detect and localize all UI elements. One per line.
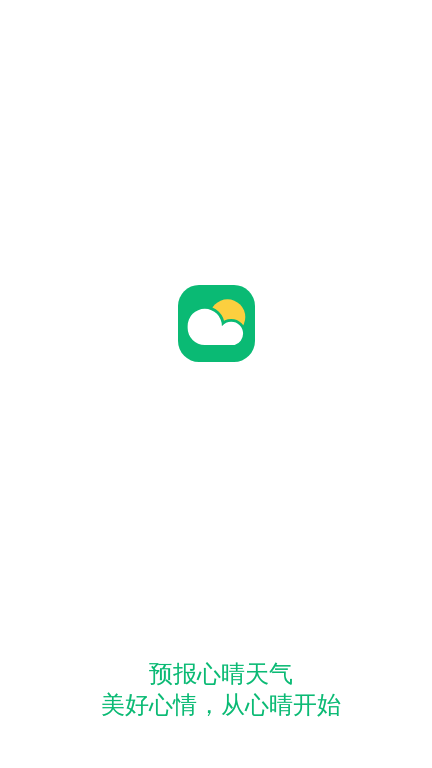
button[interactable]: 心晴天气 app logo bbox=[178, 285, 255, 362]
staticText: 美好心情，从心晴开始 bbox=[101, 690, 341, 720]
staticText: 预报心晴天气 bbox=[149, 659, 293, 689]
